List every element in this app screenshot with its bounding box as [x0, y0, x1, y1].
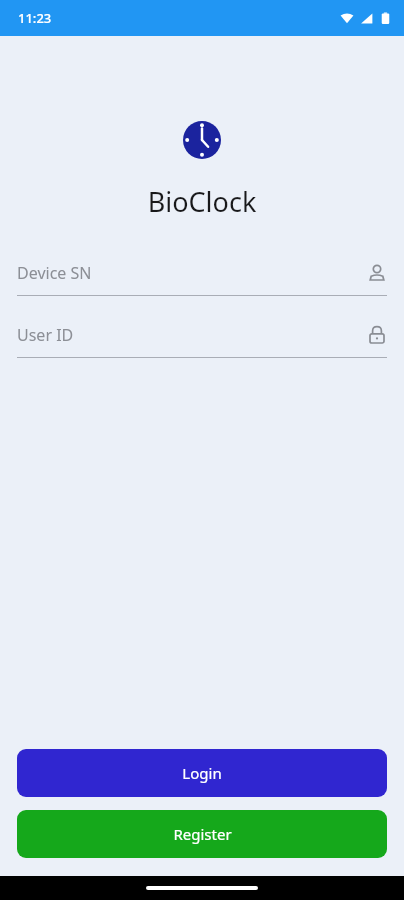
staticText: Login: [182, 763, 222, 783]
button[interactable]: Login: [17, 749, 387, 797]
staticText: User ID: [17, 324, 367, 346]
staticText: 11:23: [18, 9, 52, 27]
staticText: BioClock: [0, 183, 404, 220]
other: User ID: [367, 325, 387, 345]
staticText: Register: [173, 824, 232, 844]
button[interactable]: Device SN: [17, 251, 387, 296]
other: Device serial number: [367, 263, 387, 283]
button[interactable]: Register: [17, 810, 387, 858]
button[interactable]: User ID: [17, 313, 387, 358]
staticText: Device SN: [17, 262, 367, 284]
